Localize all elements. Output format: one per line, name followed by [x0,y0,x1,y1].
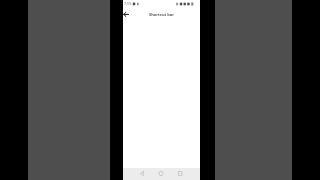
staticText: Shortcut bar [149,12,174,17]
button[interactable] [173,168,187,180]
button[interactable] [123,10,134,20]
staticText: 7:59 [124,1,131,6]
button[interactable] [154,168,168,180]
button[interactable] [135,168,149,180]
